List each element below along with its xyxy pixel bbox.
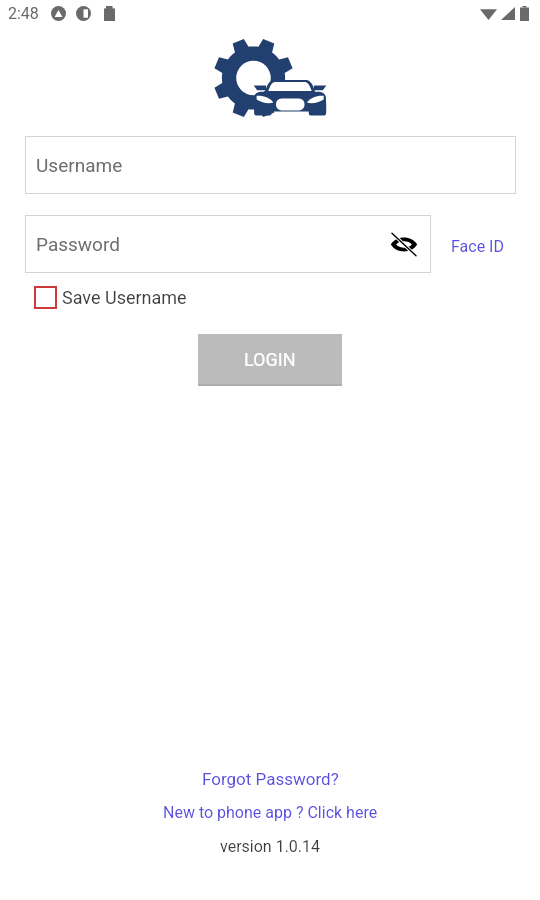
staticText: 2:48: [8, 4, 39, 23]
button[interactable]: Face ID: [443, 223, 511, 269]
staticText: LOGIN: [244, 349, 296, 370]
button[interactable]: Show password: [388, 228, 420, 260]
button[interactable]: Username: [25, 136, 516, 194]
button[interactable]: Save Username: [34, 283, 187, 311]
staticText: Username: [36, 154, 123, 176]
staticText: Save Username: [62, 287, 187, 308]
staticText: Password: [36, 233, 120, 255]
button[interactable]: LOGIN: [198, 334, 342, 384]
button[interactable]: New to phone app ? Click here: [163, 803, 378, 822]
staticText: version 1.0.14: [220, 837, 321, 856]
button[interactable]: Forgot Password?: [202, 769, 339, 789]
button[interactable]: Password: [25, 215, 431, 273]
staticText: Face ID: [451, 237, 504, 256]
